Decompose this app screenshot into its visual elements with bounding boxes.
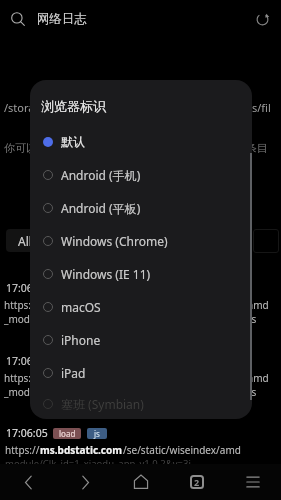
staticText: /se/static/wiseindex/amd: [123, 443, 241, 457]
button[interactable]: Refresh: [250, 7, 274, 31]
staticText: Android (手机): [61, 167, 141, 183]
staticText: 17:06:05: [6, 426, 48, 440]
staticText: macOS: [61, 299, 101, 315]
staticText: 2: [194, 476, 200, 488]
staticText: ms.bdstatic.com: [39, 371, 122, 385]
button[interactable]: Tabs: [169, 464, 225, 500]
staticText: _module/Clk_id=1_wiseindex_app_v1.0.22&v…: [4, 385, 257, 399]
button[interactable]: Forward: [57, 464, 113, 500]
staticText: /se/static/wiseindex/static/amd: [122, 298, 269, 312]
button[interactable]: macOS: [30, 290, 252, 323]
button[interactable]: Back: [0, 464, 57, 500]
staticText: https://: [4, 371, 39, 385]
staticText: iPad: [61, 365, 86, 381]
staticText: https://: [5, 443, 40, 457]
button[interactable]: 默认: [30, 125, 252, 158]
staticText: 网络日志: [37, 11, 87, 27]
button[interactable]: iPad: [30, 356, 252, 389]
button[interactable]: Windows (Chrome): [30, 224, 252, 257]
staticText: 塞班 (Symbian): [61, 396, 144, 412]
staticText: Android (平板): [61, 200, 141, 216]
staticText: Windows (IE 11): [61, 266, 151, 282]
button[interactable]: iPhone: [30, 323, 252, 356]
staticText: 17:06:04: [6, 281, 48, 295]
staticText: 你可以在这里查看到本应用发出的所有的网络请求条目: [4, 141, 268, 155]
staticText: https://: [4, 298, 39, 312]
staticText: /se/static/wiseindex/static/amd: [122, 371, 269, 385]
button[interactable]: Windows (IE 11): [30, 257, 252, 290]
staticText: iPhone: [61, 332, 101, 348]
staticText: 默认: [61, 134, 85, 149]
staticText: ms.bdstatic.com: [39, 298, 122, 312]
staticText: _module/Clk_id=1_wiseindex_app_v1.0.22&v…: [4, 312, 257, 326]
button[interactable]: Menu: [225, 464, 281, 500]
button[interactable]: Filter: [253, 229, 279, 253]
button[interactable]: Search: [6, 7, 30, 31]
staticText: 17:06:04: [6, 354, 48, 368]
staticText: 浏览器标识: [41, 98, 106, 114]
staticText: js: [94, 428, 100, 439]
staticText: All: [18, 233, 32, 249]
staticText: Windows (Chrome): [61, 233, 168, 249]
button[interactable]: Home: [113, 464, 169, 500]
button[interactable]: All: [6, 229, 44, 252]
staticText: load: [59, 428, 76, 439]
button[interactable]: Android (手机): [30, 158, 252, 191]
staticText: ms.bdstatic.com: [40, 443, 123, 457]
button[interactable]: 塞班 (Symbian): [30, 389, 252, 419]
button[interactable]: Android (平板): [30, 191, 252, 224]
staticText: /storage/emulated/0/Android/data/webview…: [4, 100, 271, 115]
staticText: module/Clk_id=1_xiaodu_app_v1.0.2&v=3j-: [5, 457, 194, 470]
